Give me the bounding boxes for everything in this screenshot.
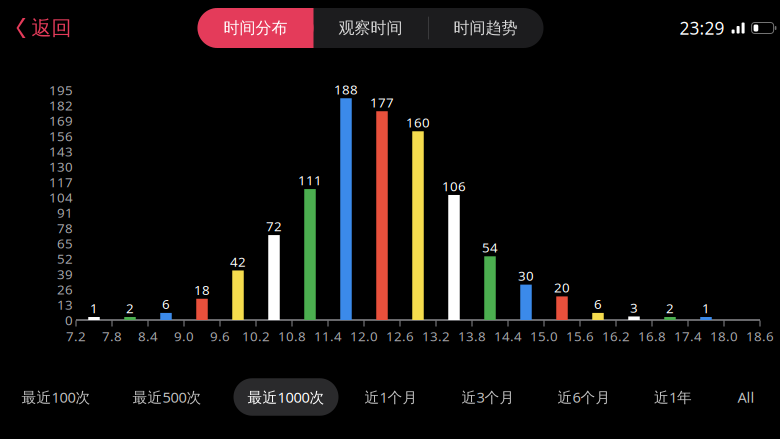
staticText: 143 [49,142,73,160]
staticText: 16.8 [638,327,666,345]
staticText: 39 [57,265,73,283]
staticText: 0 [65,311,73,329]
staticText: 17.4 [674,327,702,345]
staticText: 1 [702,299,710,317]
staticText: 近3个月 [461,387,514,407]
button[interactable]: 最近1000次 [233,378,338,416]
staticText: 13 [57,296,73,313]
staticText: 近1年 [654,387,692,407]
staticText: 13.2 [422,327,450,345]
staticText: 104 [49,188,73,206]
staticText: 12.6 [386,327,414,345]
staticText: 最近500次 [132,387,201,407]
staticText: 10.8 [278,327,306,345]
button[interactable]: 近1年 [640,378,706,416]
button[interactable]: 观察时间 [313,8,428,48]
staticText: 7.8 [102,327,122,345]
staticText: 1 [90,299,98,317]
staticText: 117 [49,173,73,191]
staticText: 195 [49,81,73,99]
button[interactable]: 时间分布 [198,8,313,48]
staticText: 160 [406,113,430,131]
staticText: 7.2 [66,327,86,345]
staticText: 18 [194,281,210,299]
staticText: 18.6 [746,327,774,345]
staticText: 177 [370,93,394,111]
button[interactable]: 返回 [0,4,83,52]
staticText: 12.0 [350,327,378,345]
staticText: 13.8 [458,327,486,345]
staticText: 30 [518,267,534,284]
staticText: 111 [298,171,322,189]
staticText: 9.6 [210,327,230,345]
staticText: 15.0 [530,327,558,345]
staticText: 26 [57,280,73,298]
staticText: 78 [57,219,73,237]
staticText: 近1个月 [364,387,417,407]
staticText: 169 [49,112,73,129]
staticText: 72 [266,217,282,235]
staticText: 近6个月 [557,387,610,407]
staticText: 6 [162,295,170,313]
staticText: 23:29 [680,16,725,39]
staticText: 2 [126,299,134,317]
staticText: 18.0 [710,327,738,345]
staticText: 10.2 [242,327,270,345]
staticText: 3 [630,299,638,316]
staticText: 返回 [31,16,71,40]
staticText: 54 [482,238,498,256]
staticText: 最近100次 [21,387,90,407]
staticText: 2 [666,299,674,317]
button[interactable]: 最近100次 [7,378,104,416]
staticText: 14.4 [494,327,522,345]
staticText: 20 [554,279,570,296]
staticText: 130 [49,158,73,175]
staticText: 182 [49,96,73,114]
button[interactable]: 近3个月 [447,378,528,416]
staticText: 188 [334,80,358,98]
button[interactable]: 近6个月 [543,378,624,416]
button[interactable]: 时间趋势 [428,8,543,48]
staticText: 106 [442,177,466,195]
staticText: 观察时间 [338,18,402,38]
button[interactable]: 最近500次 [118,378,215,416]
button[interactable]: All [723,378,768,416]
staticText: All [737,387,754,407]
staticText: 91 [57,204,73,221]
staticText: 6 [594,295,602,313]
staticText: 156 [49,127,73,145]
staticText: 时间趋势 [453,18,517,38]
staticText: 52 [57,250,73,267]
staticText: 42 [230,253,246,270]
staticText: 16.2 [602,327,630,345]
staticText: 15.6 [566,327,594,345]
staticText: 9.0 [174,327,194,345]
staticText: 11.4 [314,327,342,345]
staticText: 8.4 [138,327,158,345]
button[interactable]: 近1个月 [350,378,431,416]
staticText: 时间分布 [223,18,287,38]
staticText: 65 [57,234,73,252]
staticText: 最近1000次 [247,387,324,407]
